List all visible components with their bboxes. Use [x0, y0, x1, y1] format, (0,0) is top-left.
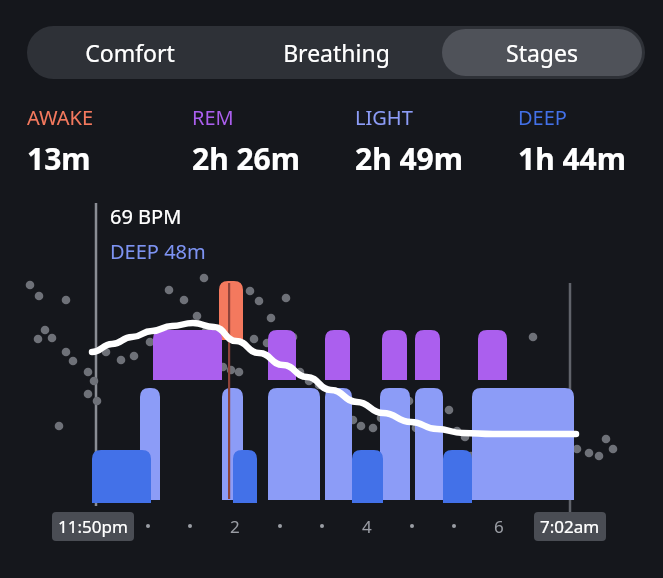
staticText: 2h 26m [192, 138, 301, 179]
staticText: 6 [494, 515, 504, 538]
staticText: Comfort [85, 37, 175, 68]
staticText: Breathing [283, 37, 390, 68]
staticText: 1h 44m [518, 138, 627, 179]
staticText: 4 [362, 515, 372, 538]
staticText: 13m [27, 138, 91, 179]
staticText: LIGHT [355, 104, 413, 131]
staticText: 69 BPM [110, 203, 182, 230]
button[interactable]: Comfort [30, 29, 230, 76]
staticText: 7:02am [540, 515, 600, 538]
staticText: DEEP [518, 104, 567, 131]
staticText: 2h 49m [355, 138, 464, 179]
staticText: DEEP 48m [110, 238, 206, 265]
button[interactable]: Stages [442, 29, 642, 76]
button[interactable]: Breathing [236, 29, 436, 76]
staticText: Stages [506, 37, 578, 68]
staticText: 11:50pm [58, 515, 128, 538]
staticText: AWAKE [27, 104, 94, 131]
staticText: REM [192, 104, 234, 131]
staticText: 2 [230, 515, 240, 538]
